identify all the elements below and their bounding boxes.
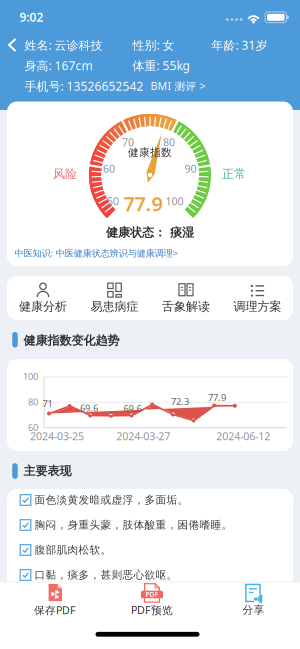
staticText: 69.6 (80, 402, 98, 414)
staticText: 手机号: 13526652542 (24, 78, 143, 94)
staticText: 年龄: 31岁 (211, 37, 267, 53)
staticText: PDF (145, 590, 158, 599)
staticText: 2024-06-12 (216, 429, 270, 443)
staticText: 舌象解读 (162, 299, 210, 314)
button[interactable]: BMI 测评 > (150, 79, 205, 93)
staticText: 71 (42, 397, 52, 410)
staticText: 100 (23, 370, 38, 383)
staticText: 80 (28, 396, 38, 408)
staticText: 正常 (222, 167, 246, 181)
staticText: 健康指数变化趋势 (23, 333, 119, 348)
staticText: 60 (103, 161, 115, 176)
staticText: 中医知识: 中医健康状态辨识与健康调理> (14, 247, 177, 259)
button[interactable]: 中医知识: 中医健康状态辨识与健康调理> (14, 247, 177, 259)
staticText: 70 (122, 135, 134, 149)
staticText: 主要表现 (23, 464, 71, 478)
staticText: 健康指数 (128, 146, 172, 159)
staticText: 50 (107, 194, 119, 208)
staticText: 腹部肌肉松软。 (34, 543, 111, 556)
staticText: 90 (184, 161, 196, 176)
staticText: 分享 (242, 603, 264, 616)
staticText: 身高: 167cm (24, 57, 92, 73)
staticText: 保存PDF (34, 603, 76, 617)
staticText: 口黏，痰多，甚则恶心欲呕。 (34, 568, 177, 581)
staticText: 体重: 55kg (132, 57, 189, 73)
staticText: 77.9 (123, 190, 162, 217)
staticText: 72.3 (171, 395, 189, 408)
staticText: 性别: 女 (132, 37, 174, 53)
staticText: 风险 (53, 167, 77, 181)
staticText: 调理方案 (233, 299, 281, 314)
staticText: PDF预览 (131, 603, 173, 617)
staticText: 姓名: 云诊科技 (24, 37, 102, 53)
staticText: 60 (28, 421, 38, 434)
staticText: 胸闷，身重头蒙，肢体酸重，困倦嗜睡。 (34, 518, 232, 531)
staticText: 健康分析 (19, 299, 67, 314)
button[interactable]: PDF (107, 578, 197, 622)
staticText: 健康状态： 痰湿 (106, 225, 194, 240)
staticText: 80 (163, 135, 175, 149)
button[interactable]: 健康分析 (7, 276, 79, 320)
staticText: 2024-03-27 (116, 429, 170, 443)
staticText: 面色淡黄发暗或虚浮，多面垢。 (34, 493, 188, 506)
staticText: 易患病症 (90, 299, 138, 314)
staticText: 69.6 (123, 402, 141, 415)
button[interactable]: 调理方案 (222, 276, 293, 320)
staticText: BMI 测评 > (150, 79, 205, 93)
button[interactable]: 舌象解读 (150, 276, 222, 320)
button[interactable]: 分享 (208, 578, 298, 622)
button[interactable]: Back (4, 37, 20, 53)
button[interactable]: 保存PDF (10, 578, 100, 622)
button[interactable]: 易患病症 (79, 276, 150, 320)
staticText: 9:02 (19, 9, 43, 25)
staticText: 100 (165, 194, 183, 208)
staticText: 77.9 (208, 391, 226, 404)
staticText: 2024-03-25 (30, 429, 84, 443)
